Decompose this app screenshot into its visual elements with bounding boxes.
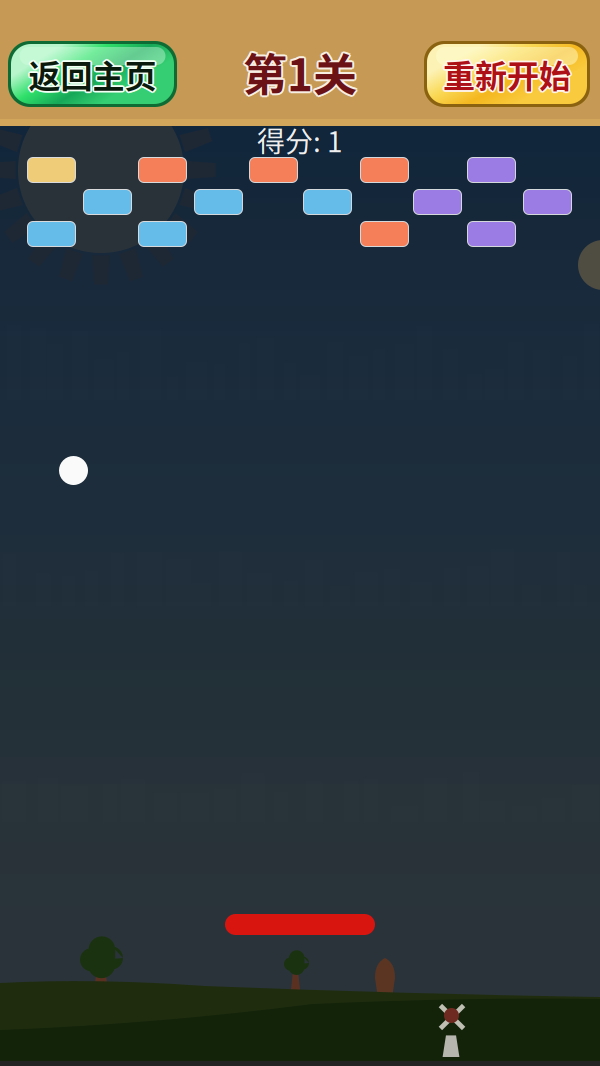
staticText: 返回主页 [30, 52, 158, 98]
staticText: 第1关 [244, 42, 358, 105]
staticText: 第1关 [245, 40, 359, 104]
staticText: 重新开始 [445, 51, 573, 97]
staticText: 返回主页 [28, 49, 156, 95]
staticText: 返回主页 [27, 51, 155, 97]
staticText: 重新开始 [444, 52, 572, 98]
staticText: 重新开始 [442, 50, 570, 96]
staticText: 返回主页 [30, 50, 158, 96]
staticText: 返回主页 [30, 51, 158, 97]
staticText: 重新开始 [442, 52, 570, 98]
staticText: 得分: 1 [257, 120, 343, 160]
button[interactable]: 重新开始 [424, 41, 590, 107]
staticText: 第1关 [242, 39, 356, 102]
staticText: 返回主页 [27, 52, 155, 98]
staticText: 第1关 [241, 40, 355, 104]
staticText: 重新开始 [441, 51, 569, 97]
button[interactable]: 返回主页 [8, 41, 177, 107]
staticText: 重新开始 [443, 49, 571, 95]
staticText: 第1关 [243, 38, 357, 102]
staticText: 第1关 [242, 42, 356, 105]
staticText: 第1关 [243, 40, 357, 104]
staticText: 重新开始 [443, 51, 571, 97]
staticText: 返回主页 [28, 52, 156, 99]
staticText: 返回主页 [28, 51, 156, 97]
staticText: 重新开始 [444, 50, 572, 96]
staticText: 第1关 [244, 39, 358, 102]
staticText: 第1关 [243, 42, 357, 106]
staticText: 重新开始 [443, 52, 571, 99]
staticText: 返回主页 [27, 50, 155, 96]
